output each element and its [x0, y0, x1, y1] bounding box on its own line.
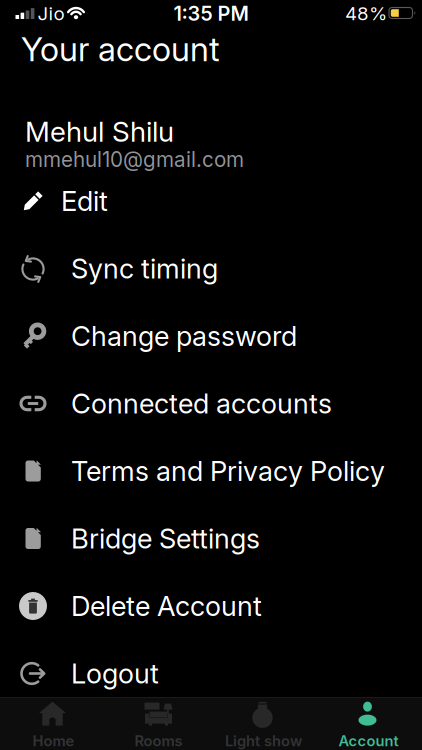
button[interactable]: Rooms: [106, 698, 211, 750]
button[interactable]: Bridge Settings: [0, 507, 422, 569]
button[interactable]: Home: [1, 698, 106, 750]
button[interactable]: Sync timing: [0, 237, 422, 299]
button[interactable]: Change password: [0, 305, 422, 367]
staticText: Terms and Privacy Policy: [71, 454, 385, 488]
staticText: Account: [338, 732, 398, 750]
button[interactable]: Logout: [0, 642, 422, 704]
staticText: 1:35 PM: [173, 1, 248, 26]
staticText: Jio: [37, 2, 64, 25]
staticText: Sync timing: [71, 252, 218, 285]
staticText: Logout: [71, 657, 159, 690]
staticText: Change password: [71, 319, 297, 353]
staticText: Light show: [225, 732, 302, 750]
staticText: Your account: [21, 29, 220, 69]
staticText: Mehul Shilu: [25, 115, 174, 148]
staticText: Rooms: [134, 732, 182, 750]
button[interactable]: Delete Account: [0, 575, 422, 637]
staticText: Bridge Settings: [71, 522, 260, 555]
staticText: Connected accounts: [71, 387, 332, 420]
button[interactable]: Light show: [211, 698, 316, 750]
staticText: 48%: [345, 2, 387, 25]
button[interactable]: Edit: [0, 177, 422, 225]
staticText: Home: [32, 732, 74, 750]
staticText: Edit: [61, 184, 108, 218]
button[interactable]: Terms and Privacy Policy: [0, 440, 422, 502]
button[interactable]: Account: [316, 698, 421, 750]
button[interactable]: Connected accounts: [0, 372, 422, 434]
staticText: Delete Account: [71, 589, 262, 623]
staticText: mmehul10@gmail.com: [25, 147, 244, 172]
